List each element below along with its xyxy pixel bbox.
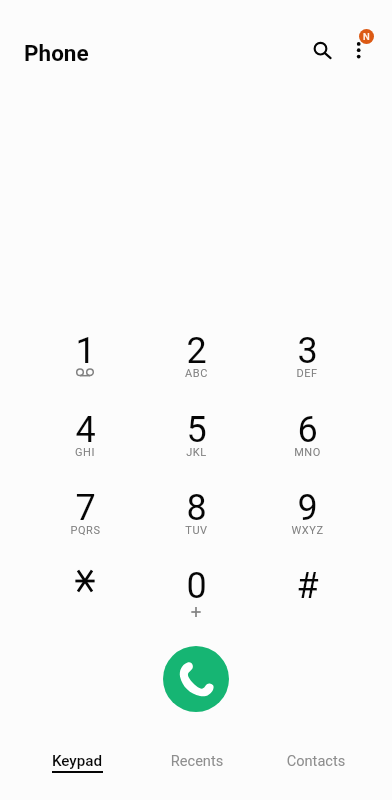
staticText: 4 <box>75 409 96 451</box>
staticText: # <box>296 565 319 607</box>
button[interactable]: 9 <box>251 474 362 552</box>
button[interactable]: Contacts <box>258 742 374 794</box>
button[interactable]: Keypad <box>19 742 135 794</box>
button[interactable]: Recents <box>139 742 255 794</box>
staticText: TUV <box>185 524 208 537</box>
staticText: 0 <box>186 565 207 607</box>
staticText: Recents <box>139 752 255 769</box>
staticText: ABC <box>185 367 208 380</box>
button[interactable]: 3 <box>251 317 362 395</box>
staticText: 6 <box>297 409 318 451</box>
staticText: WXYZ <box>291 524 324 537</box>
staticText: 1 <box>75 330 96 372</box>
button[interactable]: star <box>29 552 140 630</box>
staticText: Phone <box>24 40 89 66</box>
staticText: 9 <box>297 487 318 529</box>
button[interactable]: 8 <box>140 474 251 552</box>
staticText: 3 <box>297 330 318 372</box>
staticText: 2 <box>186 330 207 372</box>
staticText: Contacts <box>258 752 374 769</box>
button[interactable]: pound <box>251 552 362 630</box>
staticText: DEF <box>296 367 318 380</box>
button[interactable]: 2 <box>140 317 251 395</box>
staticText: MNO <box>294 446 321 459</box>
staticText: GHI <box>75 446 95 459</box>
button[interactable]: 1 <box>29 317 140 395</box>
staticText: Keypad <box>19 752 135 770</box>
button[interactable]: 5 <box>140 396 251 474</box>
button[interactable]: 4 <box>29 396 140 474</box>
button[interactable]: More options <box>338 26 380 68</box>
staticText: 7 <box>75 487 96 529</box>
staticText: 8 <box>186 487 207 529</box>
staticText: JKL <box>186 446 207 459</box>
button[interactable]: Call <box>163 646 229 712</box>
button[interactable]: 0 <box>140 552 251 630</box>
button[interactable]: Search <box>298 26 343 71</box>
staticText: 5 <box>186 409 207 451</box>
button[interactable]: 6 <box>251 396 362 474</box>
staticText: PQRS <box>70 524 101 537</box>
staticText: N <box>363 31 370 42</box>
button[interactable]: 7 <box>29 474 140 552</box>
